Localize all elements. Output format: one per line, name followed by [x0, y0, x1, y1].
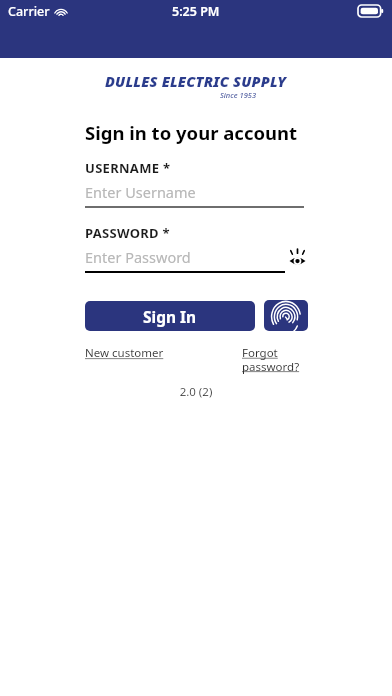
staticText: Enter Username	[85, 182, 196, 202]
button[interactable]: Enter Password	[85, 247, 285, 273]
staticText: Enter Password	[85, 247, 191, 267]
button[interactable]: Show password	[285, 247, 309, 271]
button[interactable]: Enter Username	[85, 182, 304, 208]
staticText: Sign In	[143, 306, 197, 327]
button[interactable]: Forgot password?	[242, 345, 300, 374]
button[interactable]: Sign in with fingerprint	[264, 300, 308, 331]
staticText: USERNAME *	[85, 159, 171, 177]
staticText: 2.0 (2)	[0, 384, 392, 400]
staticText: Since 1953	[220, 90, 257, 99]
button[interactable]: New customer	[85, 345, 164, 361]
staticText: PASSWORD *	[85, 224, 170, 242]
button[interactable]: Sign In	[85, 301, 255, 331]
staticText: Forgot password?	[242, 345, 300, 374]
staticText: DULLES ELECTRIC SUPPLY	[105, 71, 287, 91]
staticText: Sign in to your account	[85, 120, 298, 145]
staticText: 5:25 PM	[172, 3, 220, 20]
staticText: Carrier	[8, 3, 50, 20]
staticText: New customer	[85, 345, 164, 361]
